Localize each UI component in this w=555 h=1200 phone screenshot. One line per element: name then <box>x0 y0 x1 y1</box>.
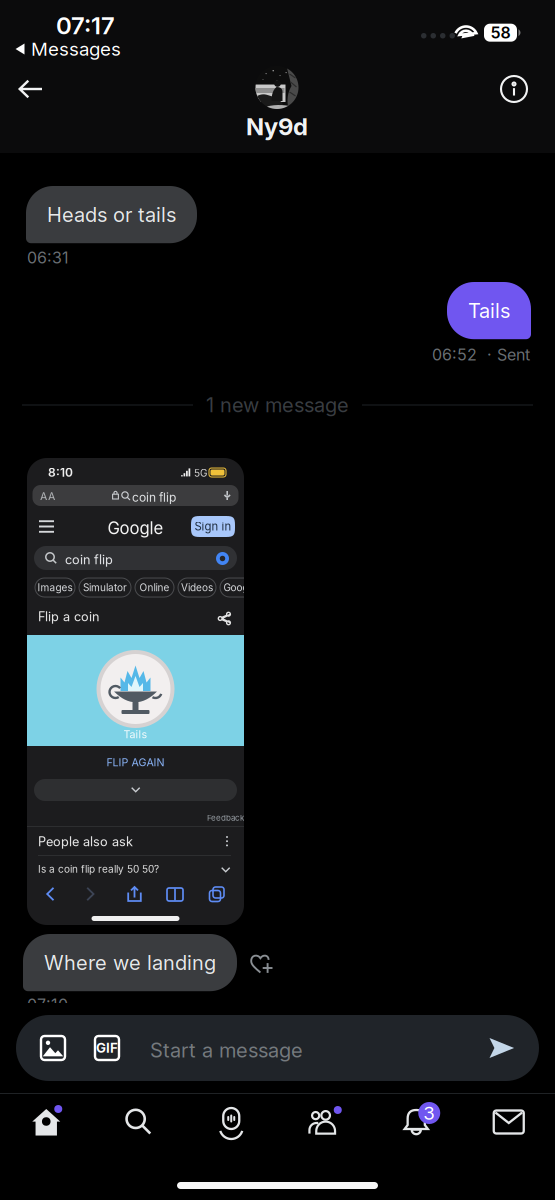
staticText: 3 <box>423 1102 435 1124</box>
staticText: FLIP AGAIN <box>106 756 164 769</box>
staticText: 07:10 <box>27 995 68 1014</box>
button[interactable]: Search <box>92 1096 185 1148</box>
staticText: coin flip <box>65 552 113 567</box>
button[interactable]: Ny9d <box>217 66 337 141</box>
button[interactable]: Add photo <box>33 1028 73 1068</box>
button[interactable]: Direct messages <box>462 1096 555 1148</box>
button[interactable]: Messages <box>15 37 135 61</box>
staticText: 07:17 <box>56 11 115 40</box>
staticText: 1 new message <box>206 393 349 417</box>
staticText: Google <box>223 581 256 594</box>
button[interactable]: Spaces <box>185 1096 277 1148</box>
staticText: Tails <box>123 728 147 741</box>
staticText: Online <box>139 581 169 594</box>
staticText: People also ask <box>38 834 133 849</box>
button[interactable]: Add GIF <box>87 1028 127 1068</box>
button[interactable]: Home <box>0 1096 92 1148</box>
staticText: Tails <box>468 298 510 323</box>
staticText: AA <box>40 490 55 503</box>
staticText: Is a coin flip really 50 50? <box>38 863 159 875</box>
button[interactable]: Conversation info <box>492 67 536 111</box>
staticText: Flip a coin <box>38 609 99 624</box>
staticText: Videos <box>181 581 213 594</box>
staticText: Ny9d <box>246 112 308 141</box>
button[interactable]: Add reaction <box>245 947 279 981</box>
button[interactable]: Communities <box>277 1096 370 1148</box>
button[interactable]: Back <box>9 67 53 111</box>
staticText: Messages <box>31 38 121 60</box>
staticText: Simulator <box>83 581 127 594</box>
staticText: coin flip <box>132 490 176 504</box>
staticText: 06:52 · Sent <box>432 345 530 364</box>
button[interactable]: Notifications <box>370 1096 462 1148</box>
staticText: Google <box>107 518 163 538</box>
staticText: Heads or tails <box>47 202 176 227</box>
staticText: Feedback <box>207 813 244 823</box>
staticText: 06:31 <box>27 248 69 267</box>
staticText: 5G <box>194 467 207 479</box>
staticText: Start a message <box>150 1038 303 1062</box>
button[interactable]: Send <box>482 1028 522 1068</box>
staticText: 8:10 <box>48 465 73 479</box>
staticText: GIF <box>96 1040 118 1056</box>
staticText: Images <box>37 581 72 594</box>
staticText: Where we landing <box>44 950 216 975</box>
staticText: Sign in <box>194 520 231 533</box>
staticText: 58 <box>490 23 510 42</box>
